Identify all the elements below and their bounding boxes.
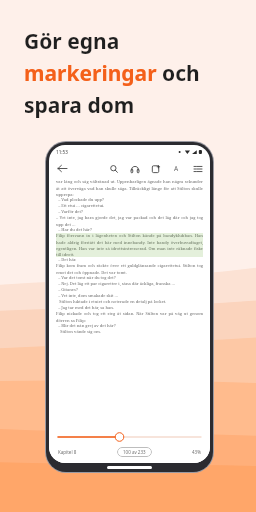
staticText: A: [174, 164, 179, 173]
staticText: – Det här.: [56, 257, 203, 263]
staticText: – Ett etui … cigarettetui.: [56, 203, 203, 209]
staticText: – Vet inte, dom smakade skit …: [56, 293, 203, 299]
staticText: var lång och såg vältränad ut. Uppenbarl…: [56, 179, 203, 197]
button[interactable]: 100 av 233: [117, 447, 152, 457]
staticText: – Blir det nån grej av det här?: [56, 323, 203, 329]
staticText: markeringar och: [24, 59, 200, 88]
button[interactable]: Innehåll: [191, 162, 204, 175]
staticText: – Nej. Det låg ett par cigaretter i, sån…: [56, 281, 203, 287]
staticText: 100 av 233: [123, 449, 146, 455]
staticText: – Var det tomt när du tog det?: [56, 275, 203, 281]
staticText: Filip nickade och tog ett steg åt sidan.…: [56, 311, 203, 323]
staticText: 11:53: [56, 149, 68, 155]
staticText: – Vad plockade du upp?: [56, 197, 203, 203]
button[interactable]: Textstorlek: [170, 162, 183, 175]
button[interactable]: Ljudbok: [128, 162, 141, 175]
staticText: Stilton luktade i etuiet och noterade en…: [56, 299, 203, 305]
staticText: Filip försvann in i lägenheten och Stilt…: [56, 233, 203, 257]
staticText: – Har du det här?: [56, 227, 203, 233]
button[interactable]: Sök: [107, 162, 120, 175]
staticText: Gör egna: [24, 27, 120, 56]
button[interactable]: Filip försvann in i lägenheten och Stilt…: [56, 233, 203, 257]
staticText: spara dom: [24, 91, 135, 120]
staticText: Filip kom fram och räckte över ett guldg…: [56, 263, 203, 275]
button[interactable]: Tillbaka: [55, 161, 70, 176]
staticText: – Jag tar med det här, sa han.: [56, 305, 203, 311]
staticText: 43%: [192, 449, 201, 455]
staticText: – Gitanes?: [56, 287, 203, 293]
staticText: Kapitel 8: [58, 449, 77, 455]
button[interactable]: Läsposition: [58, 432, 201, 442]
staticText: – Vet inte, jag bara gjorde det, jag var…: [56, 215, 203, 227]
staticText: Stilton vände sig om.: [56, 329, 203, 335]
staticText: – Varför det?: [56, 209, 203, 215]
button[interactable]: Bokmärke: [149, 162, 162, 175]
